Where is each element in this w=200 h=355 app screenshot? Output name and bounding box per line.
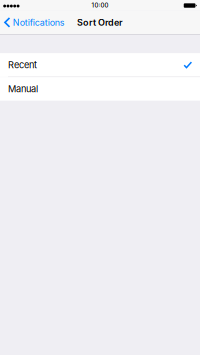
button[interactable]: Back to Notifications (0, 11, 69, 34)
staticText: Notifications (13, 17, 65, 28)
button[interactable]: Recent (0, 53, 200, 77)
staticText: Manual (8, 83, 38, 94)
staticText: Sort Order (77, 17, 123, 28)
staticText: Recent (8, 59, 37, 70)
staticText: 10:00 (91, 2, 108, 9)
button[interactable]: Manual (0, 77, 200, 101)
